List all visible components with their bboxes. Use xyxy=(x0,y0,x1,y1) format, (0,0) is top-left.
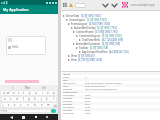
button[interactable]: resource-id xyxy=(61,81,160,84)
staticText: c xyxy=(20,103,22,107)
button[interactable]: Layout bounds xyxy=(122,2,128,8)
button[interactable]: text xyxy=(61,78,160,81)
staticText: t xyxy=(23,91,25,95)
staticText: z xyxy=(8,103,10,107)
button[interactable]: a xyxy=(2,96,8,102)
button[interactable]: View xyxy=(63,54,160,58)
button[interactable]: content-desc xyxy=(61,90,160,93)
button[interactable]: Zoom out xyxy=(103,3,108,8)
button[interactable]: u xyxy=(33,90,39,96)
button[interactable]: focused xyxy=(61,108,160,111)
button[interactable] xyxy=(75,3,86,8)
button[interactable]: b xyxy=(31,102,38,108)
button[interactable]: class xyxy=(61,84,160,87)
button[interactable]: o xyxy=(45,90,51,96)
button[interactable]: ⇧ xyxy=(1,102,6,108)
button[interactable]: I'm xyxy=(42,86,46,90)
button[interactable]: Enter xyxy=(51,109,56,113)
button[interactable]: Toolbar xyxy=(63,46,160,50)
staticText: class xyxy=(63,84,69,87)
staticText: checkable xyxy=(63,93,75,96)
button[interactable]: checked xyxy=(61,96,160,99)
button[interactable]: y xyxy=(27,90,33,96)
staticText: index xyxy=(63,75,70,78)
button[interactable]: ⌫ xyxy=(52,102,57,108)
button[interactable]: package xyxy=(61,87,160,90)
button[interactable]: q xyxy=(1,90,6,96)
button[interactable]: Warning xyxy=(69,3,73,7)
staticText: package xyxy=(63,87,73,90)
button[interactable]: Zoom in xyxy=(112,3,117,8)
button[interactable]: Grid xyxy=(63,3,67,7)
button[interactable]: View xyxy=(63,58,160,62)
staticText: layout xyxy=(63,72,71,75)
button[interactable]: ContentFrame xyxy=(63,30,160,34)
button[interactable] xyxy=(12,109,46,113)
staticText: u xyxy=(35,91,37,95)
staticText: ConstraintLayout xyxy=(79,34,101,38)
button[interactable]: ?123 xyxy=(1,109,8,113)
button[interactable]: s xyxy=(8,96,14,102)
staticText: [0,0][1080,1920] xyxy=(81,14,101,18)
button[interactable]: i xyxy=(39,90,45,96)
staticText: clickable xyxy=(63,99,73,102)
staticText: false xyxy=(85,96,91,99)
button[interactable]: LinearLayout xyxy=(63,18,160,22)
button[interactable]: e xyxy=(11,90,16,96)
button[interactable]: f xyxy=(20,96,26,102)
staticText: q xyxy=(3,91,5,95)
button[interactable]: layout xyxy=(61,72,160,75)
button[interactable]: FrameLayout xyxy=(63,22,160,26)
button[interactable]: focusable xyxy=(61,105,160,108)
button[interactable]: ActionBarOverlay xyxy=(63,26,160,30)
button[interactable]: index xyxy=(61,75,160,78)
button[interactable]: DecorView xyxy=(63,14,160,18)
button[interactable]: z xyxy=(6,102,12,108)
staticText: b xyxy=(34,103,36,107)
button[interactable]: l xyxy=(50,96,56,102)
staticText: false xyxy=(85,108,91,111)
button[interactable]: g xyxy=(26,96,32,102)
button[interactable]: enabled xyxy=(61,102,160,105)
button[interactable]: checkable xyxy=(61,93,160,96)
button[interactable]: . xyxy=(46,109,50,113)
staticText: i xyxy=(42,91,43,95)
button[interactable]: t xyxy=(21,90,27,96)
button[interactable]: d xyxy=(14,96,20,102)
button[interactable]: v xyxy=(24,102,31,108)
button[interactable]: The xyxy=(25,86,30,90)
staticText: resource-id xyxy=(63,81,76,84)
button[interactable]: j xyxy=(38,96,44,102)
button[interactable]: My Application xyxy=(0,5,58,14)
button[interactable]: AppCompatTextView xyxy=(63,50,160,54)
button[interactable]: , xyxy=(8,109,12,113)
staticText: l xyxy=(53,97,54,101)
staticText: d xyxy=(16,97,18,101)
button[interactable]: w xyxy=(6,90,11,96)
staticText: focusable xyxy=(63,105,74,108)
button[interactable]: TextView:Hello xyxy=(63,38,160,42)
button[interactable]: clickable xyxy=(61,99,160,102)
button[interactable]: m xyxy=(45,102,52,108)
button[interactable]: I xyxy=(12,86,13,90)
staticText: text xyxy=(63,78,68,81)
button[interactable]: n xyxy=(38,102,45,108)
button[interactable]: scrollable xyxy=(61,111,160,114)
button[interactable]: r xyxy=(16,90,21,96)
button[interactable]: c xyxy=(18,102,24,108)
button[interactable]: ActionBarContainer xyxy=(63,42,160,46)
staticText: e xyxy=(13,91,15,95)
staticText: a xyxy=(4,97,6,101)
other: Back xyxy=(10,116,13,119)
staticText: focused xyxy=(63,108,72,111)
button[interactable]: x xyxy=(12,102,18,108)
button[interactable]: Hello xyxy=(6,36,46,55)
staticText: ⇧ xyxy=(2,104,5,107)
button[interactable]: k xyxy=(44,96,50,102)
button[interactable]: ConstraintLayout xyxy=(63,34,160,38)
button[interactable]: h xyxy=(32,96,38,102)
button[interactable]: p xyxy=(51,90,57,96)
staticText: FrameLayout xyxy=(71,22,88,26)
